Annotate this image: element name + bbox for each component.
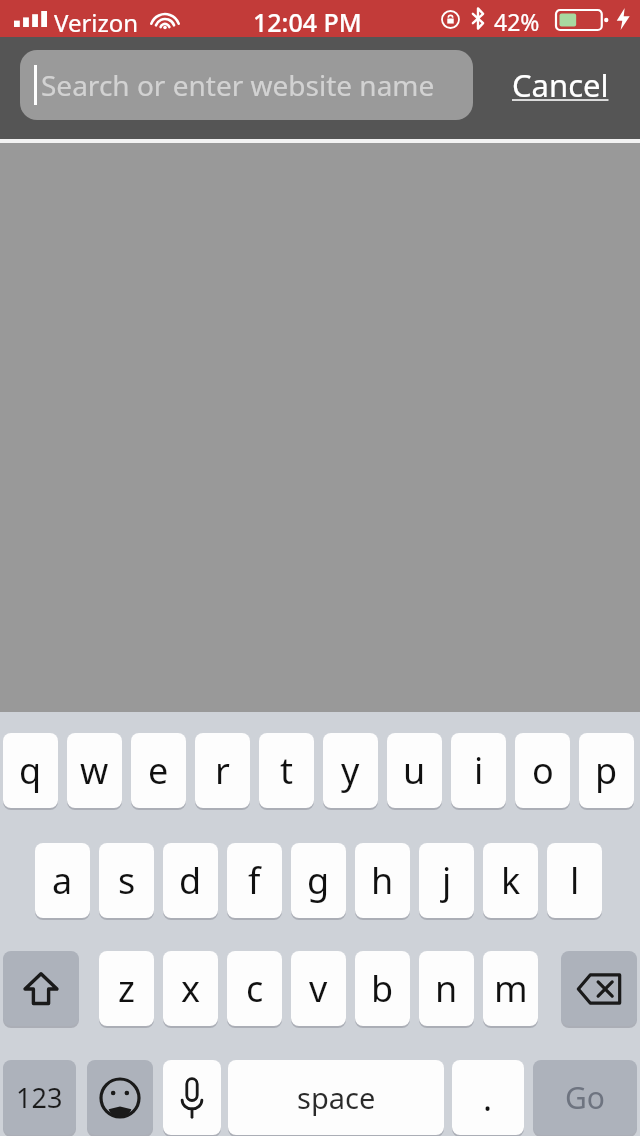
button[interactable]: r bbox=[195, 733, 250, 808]
button[interactable]: Shift bbox=[3, 951, 79, 1026]
staticText: l bbox=[570, 856, 580, 905]
button[interactable]: Emoji bbox=[87, 1060, 153, 1135]
button[interactable]: y bbox=[323, 733, 378, 808]
button[interactable]: t bbox=[259, 733, 314, 808]
staticText: v bbox=[309, 964, 328, 1013]
button[interactable]: h bbox=[355, 843, 410, 918]
staticText: z bbox=[118, 964, 135, 1013]
staticText: r bbox=[215, 746, 230, 795]
staticText: Verizon bbox=[54, 6, 139, 39]
staticText: y bbox=[341, 746, 360, 795]
staticText: 12:04 PM bbox=[253, 5, 362, 39]
staticText: 123 bbox=[16, 1079, 63, 1116]
button[interactable]: Dictate bbox=[163, 1060, 221, 1135]
staticText: d bbox=[179, 856, 202, 905]
button[interactable]: o bbox=[515, 733, 570, 808]
staticText: g bbox=[307, 856, 330, 905]
button[interactable]: Search or enter website name bbox=[20, 50, 473, 120]
button[interactable]: . bbox=[452, 1060, 524, 1135]
staticText: j bbox=[442, 856, 452, 905]
staticText: e bbox=[148, 746, 169, 795]
button[interactable]: k bbox=[483, 843, 538, 918]
staticText: p bbox=[595, 746, 618, 795]
button[interactable]: v bbox=[291, 951, 346, 1026]
staticText: x bbox=[181, 964, 201, 1013]
button[interactable]: f bbox=[227, 843, 282, 918]
staticText: space bbox=[297, 1078, 376, 1117]
button[interactable]: c bbox=[227, 951, 282, 1026]
button[interactable]: q bbox=[3, 733, 58, 808]
staticText: f bbox=[248, 856, 261, 905]
button[interactable]: Backspace bbox=[561, 951, 637, 1026]
staticText: c bbox=[246, 964, 264, 1013]
staticText: i bbox=[474, 746, 484, 795]
staticText: b bbox=[371, 964, 394, 1013]
button[interactable]: space bbox=[228, 1060, 444, 1135]
staticText: o bbox=[532, 746, 554, 795]
button[interactable]: 123 bbox=[3, 1060, 76, 1135]
staticText: 42% bbox=[494, 6, 540, 37]
button[interactable]: x bbox=[163, 951, 218, 1026]
staticText: . bbox=[483, 1075, 493, 1121]
button[interactable]: Cancel bbox=[486, 50, 634, 120]
staticText: m bbox=[494, 964, 528, 1013]
button[interactable]: w bbox=[67, 733, 122, 808]
button[interactable]: i bbox=[451, 733, 506, 808]
staticText: Cancel bbox=[512, 64, 609, 106]
button[interactable]: Go bbox=[533, 1060, 637, 1135]
button[interactable]: z bbox=[99, 951, 154, 1026]
staticText: w bbox=[80, 746, 109, 795]
staticText: Go bbox=[565, 1077, 605, 1118]
button[interactable]: a bbox=[35, 843, 90, 918]
button[interactable]: m bbox=[483, 951, 538, 1026]
staticText: t bbox=[280, 746, 293, 795]
button[interactable]: j bbox=[419, 843, 474, 918]
button[interactable]: l bbox=[547, 843, 602, 918]
button[interactable]: g bbox=[291, 843, 346, 918]
button[interactable]: n bbox=[419, 951, 474, 1026]
button[interactable]: d bbox=[163, 843, 218, 918]
staticText: k bbox=[501, 856, 521, 905]
staticText: q bbox=[19, 746, 42, 795]
staticText: u bbox=[403, 746, 426, 795]
button[interactable]: s bbox=[99, 843, 154, 918]
button[interactable]: u bbox=[387, 733, 442, 808]
staticText: Search or enter website name bbox=[41, 66, 435, 104]
button[interactable]: b bbox=[355, 951, 410, 1026]
staticText: n bbox=[435, 964, 458, 1013]
staticText: a bbox=[52, 856, 73, 905]
staticText: s bbox=[118, 856, 136, 905]
button[interactable]: p bbox=[579, 733, 634, 808]
button[interactable]: e bbox=[131, 733, 186, 808]
staticText: h bbox=[371, 856, 394, 905]
